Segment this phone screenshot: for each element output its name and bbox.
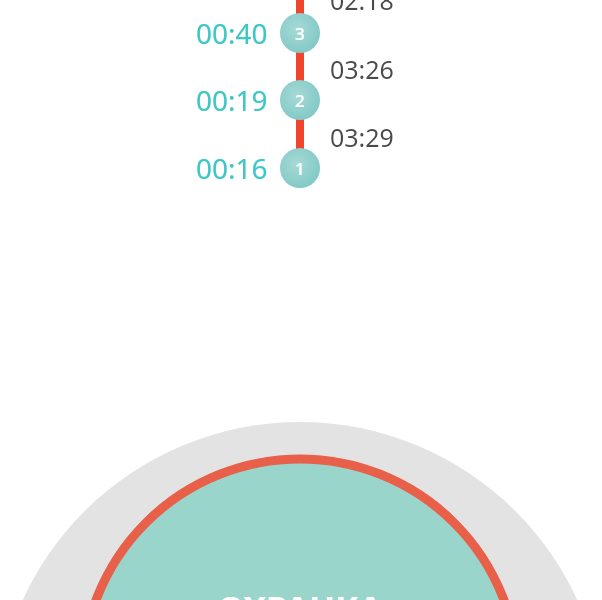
- button[interactable]: ОХРАНКА: [0, 0, 602, 600]
- button[interactable]: Lap timeline: [0, 0, 602, 600]
